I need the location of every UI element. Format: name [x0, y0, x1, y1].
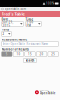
staticText: Restaurant Name [1, 38, 27, 41]
staticText: powered by [40, 90, 49, 91]
button[interactable]: Jun 29, 2015 [1, 21, 23, 26]
staticText: Jun 29, 2015 [2, 20, 13, 27]
button[interactable]: 25 [48, 52, 58, 57]
button[interactable]: Enter OpenTable Restaurant Name [1, 41, 58, 46]
button[interactable]: 10 [13, 52, 24, 57]
staticText: OpenTable [40, 91, 56, 95]
staticText: 20 [40, 52, 44, 56]
staticText: Party [1, 28, 9, 31]
staticText: Fred's Table [1, 11, 24, 17]
staticText: 10 [16, 52, 20, 56]
button[interactable]: 5 [1, 52, 12, 57]
button[interactable]: 20 [36, 52, 47, 57]
staticText: opentable.com [4, 7, 25, 11]
button[interactable]: Search [23, 58, 36, 63]
staticText: 100% [46, 2, 54, 5]
staticText: Date [1, 18, 8, 21]
staticText: 15 [28, 52, 32, 56]
staticText: 5 [6, 52, 8, 56]
staticText: Time [25, 18, 33, 21]
staticText: Search [25, 59, 34, 62]
staticText: Enter OpenTable Restaurant Name [2, 42, 48, 46]
staticText: Number of Results [1, 48, 28, 51]
staticText: 25 [51, 52, 55, 56]
button[interactable]: 2 [1, 31, 11, 36]
button[interactable]: 15 [25, 52, 35, 57]
staticText: 2 [2, 32, 4, 36]
staticText: 7:00 PM [26, 20, 33, 27]
button[interactable]: 7:00 PM [25, 21, 41, 26]
